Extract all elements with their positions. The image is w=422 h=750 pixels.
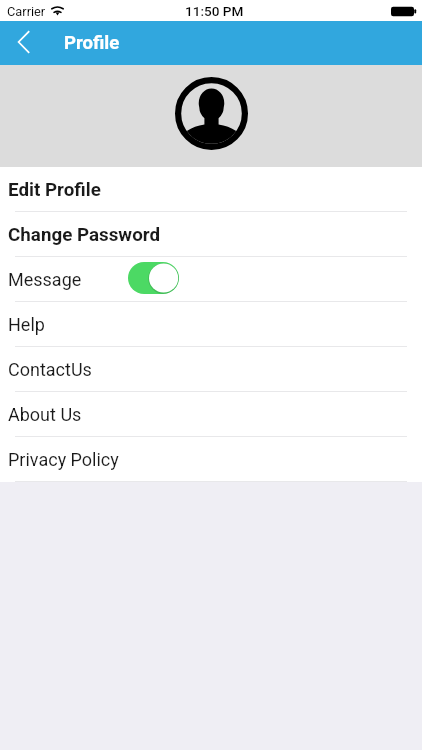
staticText: Privacy Policy xyxy=(8,449,119,470)
button[interactable]: Message xyxy=(0,257,422,302)
button[interactable]: Back xyxy=(0,21,44,65)
button[interactable]: Help xyxy=(0,302,422,347)
button[interactable]: About Us xyxy=(0,392,422,437)
button[interactable]: Edit Profile xyxy=(0,167,422,212)
staticText: ContactUs xyxy=(8,359,92,380)
staticText: Carrier xyxy=(7,4,46,19)
staticText: Edit Profile xyxy=(8,179,101,201)
staticText: About Us xyxy=(8,404,82,425)
button[interactable]: ContactUs xyxy=(0,347,422,392)
staticText: Help xyxy=(8,314,45,335)
button[interactable]: Privacy Policy xyxy=(0,437,422,482)
button[interactable]: Change Password xyxy=(0,212,422,257)
staticText: Profile xyxy=(64,32,120,54)
staticText: Message xyxy=(8,269,82,290)
staticText: 11:50 PM xyxy=(185,3,244,19)
staticText: Change Password xyxy=(8,224,161,246)
button[interactable]: Message toggle xyxy=(128,262,179,294)
